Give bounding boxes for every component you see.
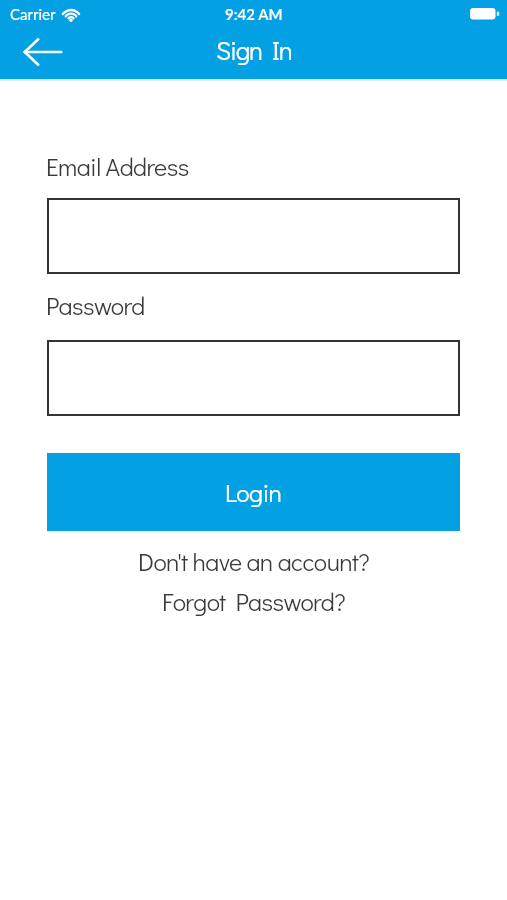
staticText: Sign In: [216, 33, 292, 67]
staticText: Carrier: [10, 5, 56, 23]
staticText: Password: [46, 289, 145, 322]
button[interactable]: Login: [47, 453, 460, 531]
button[interactable]: [47, 340, 460, 416]
staticText: 9:42 AM: [225, 5, 283, 23]
button[interactable]: Don't have an account?: [138, 545, 370, 578]
button[interactable]: [47, 198, 460, 274]
staticText: Don't have an account?: [138, 545, 370, 578]
staticText: Email Address: [46, 150, 189, 183]
staticText: Forgot Password?: [162, 585, 346, 618]
button[interactable]: Forgot Password?: [162, 585, 346, 618]
button[interactable]: [24, 38, 62, 66]
staticText: Login: [225, 476, 282, 509]
